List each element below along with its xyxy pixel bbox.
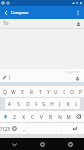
staticText: A xyxy=(8,101,11,107)
button[interactable]: Emoji xyxy=(10,123,19,134)
staticText: I xyxy=(63,89,65,95)
button[interactable]: Q xyxy=(0,86,9,97)
staticText: K xyxy=(67,101,70,107)
staticText: V xyxy=(40,114,43,120)
staticText: Y xyxy=(47,89,50,95)
staticText: suggestion xyxy=(65,70,81,74)
button[interactable]: O xyxy=(68,86,76,97)
button[interactable]: Add recipient xyxy=(74,20,82,28)
button[interactable]: U xyxy=(52,86,60,97)
staticText: T xyxy=(39,89,42,95)
staticText: S xyxy=(17,101,20,107)
button[interactable]: C xyxy=(28,111,37,122)
button[interactable]: V xyxy=(37,111,46,122)
button[interactable]: Back xyxy=(0,6,11,19)
button[interactable]: More options xyxy=(71,6,84,19)
button[interactable]: H xyxy=(48,98,56,109)
staticText: J xyxy=(59,101,61,107)
staticText: X xyxy=(22,114,25,120)
button[interactable]: Keyboard settings xyxy=(2,75,7,80)
staticText: E xyxy=(21,89,24,95)
staticText: U xyxy=(54,89,58,95)
button[interactable]: Recents xyxy=(56,138,84,150)
button[interactable]: I xyxy=(60,86,68,97)
button[interactable]: B xyxy=(46,111,55,122)
staticText: B xyxy=(49,114,52,120)
staticText: ?123 xyxy=(0,126,10,132)
staticText: O xyxy=(70,89,74,95)
staticText: Compose xyxy=(11,10,29,15)
button[interactable]: F xyxy=(32,98,40,109)
staticText: M xyxy=(66,114,71,120)
button[interactable]: R xyxy=(27,86,36,97)
button[interactable]: G xyxy=(40,98,48,109)
button[interactable]: X xyxy=(19,111,28,122)
button[interactable]: W xyxy=(9,86,18,97)
staticText: H xyxy=(50,101,54,107)
button[interactable]: J xyxy=(56,98,64,109)
button[interactable]: Hide keyboard xyxy=(0,138,28,150)
staticText: L xyxy=(75,101,78,107)
staticText: . xyxy=(60,126,62,132)
staticText: F xyxy=(35,101,38,107)
button[interactable]: L xyxy=(72,98,80,109)
staticText: C xyxy=(31,114,34,120)
button[interactable]: P xyxy=(76,86,84,97)
staticText: P xyxy=(79,89,82,95)
staticText: To xyxy=(3,20,9,27)
button[interactable]: Backspace xyxy=(73,111,84,122)
button[interactable]: S xyxy=(14,98,23,109)
button[interactable]: K xyxy=(64,98,72,109)
button[interactable]: D xyxy=(23,98,32,109)
staticText: W xyxy=(11,89,16,95)
button[interactable]: A xyxy=(5,98,14,109)
button[interactable]: Z xyxy=(10,111,19,122)
staticText: , xyxy=(23,126,25,132)
staticText: Z xyxy=(13,114,16,120)
button[interactable]: Voice input xyxy=(75,76,80,81)
staticText: N xyxy=(58,114,62,120)
staticText: G xyxy=(42,101,46,107)
button[interactable]: ?123 xyxy=(0,123,10,134)
button[interactable]: E xyxy=(18,86,27,97)
button[interactable]: M xyxy=(64,111,73,122)
staticText: R xyxy=(30,89,33,95)
button[interactable]: . xyxy=(56,123,65,134)
button[interactable]: T xyxy=(36,86,44,97)
button[interactable]: Enter xyxy=(65,123,84,134)
button[interactable]: Home xyxy=(28,138,56,150)
staticText: Q xyxy=(3,89,7,95)
button[interactable]: Shift xyxy=(0,111,10,122)
button[interactable]: N xyxy=(55,111,64,122)
button[interactable]: Y xyxy=(44,86,52,97)
button[interactable]: , xyxy=(19,123,28,134)
staticText: D xyxy=(26,101,30,107)
